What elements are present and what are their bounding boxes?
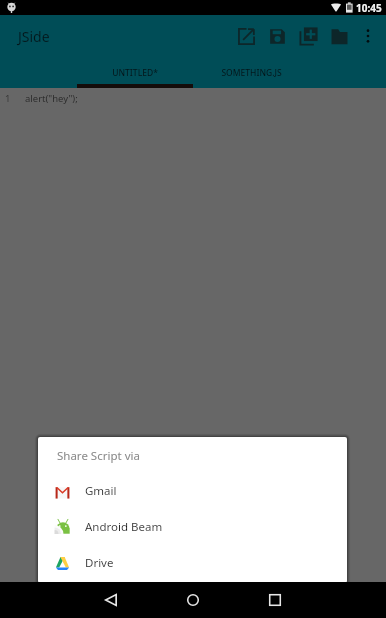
button[interactable]: Recent apps <box>252 582 298 618</box>
button[interactable]: Open folder <box>324 15 355 57</box>
staticText: Drive <box>85 555 114 571</box>
button[interactable]: Open in new <box>231 15 262 57</box>
staticText: 10:45 <box>356 1 382 15</box>
staticText: UNTITLED* <box>112 67 158 79</box>
button[interactable]: Android Beam <box>38 509 347 545</box>
button[interactable]: UNTITLED* <box>77 57 193 88</box>
button[interactable]: New file <box>293 15 324 57</box>
button[interactable]: Save <box>262 15 293 57</box>
button[interactable]: SOMETHING.JS <box>193 57 309 88</box>
staticText: alert("hey"); <box>25 92 78 105</box>
button[interactable]: More options <box>352 15 384 57</box>
button[interactable]: Drive <box>38 545 347 581</box>
button[interactable]: Home <box>170 582 216 618</box>
staticText: Gmail <box>85 483 117 499</box>
button[interactable]: Gmail <box>38 473 347 509</box>
staticText: Android Beam <box>85 519 163 535</box>
staticText: 1 <box>5 92 11 105</box>
staticText: Share Script via <box>57 448 140 464</box>
staticText: JSide <box>18 27 50 46</box>
staticText: SOMETHING.JS <box>221 67 282 79</box>
button[interactable]: Back <box>88 582 134 618</box>
